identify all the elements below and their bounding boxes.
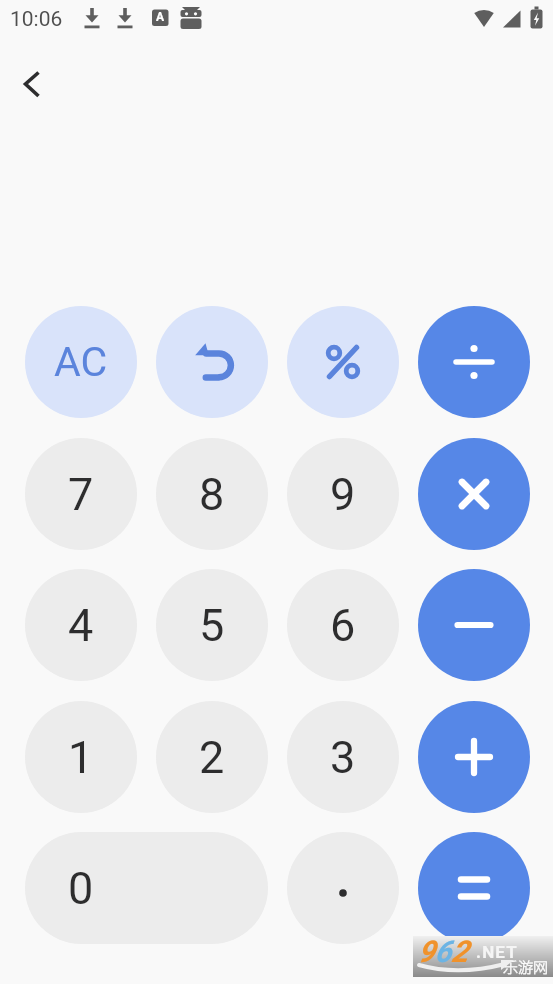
button[interactable]: AC (25, 306, 137, 418)
button[interactable]: 4 (25, 569, 137, 681)
staticText: 9 (330, 468, 356, 521)
staticText: 0 (68, 862, 94, 915)
button[interactable]: 0 (25, 832, 268, 944)
button[interactable]: 5 (156, 569, 268, 681)
button[interactable]: 7 (25, 438, 137, 550)
staticText: 7 (68, 468, 94, 521)
staticText: 1 (68, 731, 94, 784)
staticText: 6 (330, 599, 356, 652)
button[interactable] (418, 438, 530, 550)
button[interactable] (418, 306, 530, 418)
staticText: 2 (199, 731, 225, 784)
button[interactable]: 6 (287, 569, 399, 681)
button[interactable] (287, 832, 399, 944)
button[interactable]: 2 (156, 701, 268, 813)
button[interactable] (418, 701, 530, 813)
staticText: A (156, 10, 165, 24)
staticText: .NET (476, 942, 519, 962)
staticText: 8 (199, 468, 225, 521)
staticText: 5 (199, 599, 225, 652)
button[interactable]: 9 (287, 438, 399, 550)
button[interactable]: 3 (287, 701, 399, 813)
button[interactable] (418, 832, 530, 944)
button[interactable] (287, 306, 399, 418)
button[interactable] (12, 64, 52, 104)
button[interactable]: 8 (156, 438, 268, 550)
staticText: 乐游网 (503, 956, 549, 978)
staticText: 962 (418, 934, 469, 969)
button[interactable]: 1 (25, 701, 137, 813)
staticText: 10:06 (10, 7, 63, 32)
button[interactable] (156, 306, 268, 418)
button[interactable] (418, 569, 530, 681)
staticText: 4 (68, 599, 94, 652)
staticText: AC (54, 338, 108, 386)
staticText: 3 (330, 731, 356, 784)
